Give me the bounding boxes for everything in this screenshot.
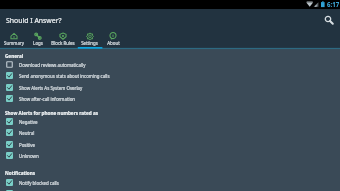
staticText: Settings [81,40,98,46]
button[interactable]: Summary [0,29,27,49]
staticText: Neutral [19,130,35,136]
staticText: Summary [4,40,24,46]
button[interactable]: Notify unblocked calls [0,188,340,191]
button[interactable]: Search [318,10,340,30]
staticText: Send anonymous stats about incoming call… [19,73,110,79]
button[interactable]: Positive [0,139,340,150]
staticText: Negative [19,119,38,125]
button[interactable]: Unknown [0,150,340,161]
staticText: Show Alerts for phone numbers rated as [5,110,99,116]
staticText: Should I Answer? [6,16,62,25]
staticText: Show after-call information [19,96,76,102]
button[interactable]: Settings [77,29,102,49]
button[interactable]: Send anonymous stats about incoming call… [0,70,340,81]
button[interactable]: Show Alerts As System Overlay [0,82,340,93]
button[interactable]: Download reviews automatically [0,59,340,70]
button[interactable]: About [102,29,124,49]
staticText: Notify blocked calls [19,180,59,186]
button[interactable]: Logs [27,29,48,49]
staticText: Download reviews automatically [19,62,86,68]
button[interactable]: Show after-call information [0,93,340,104]
staticText: 6:17 [327,0,340,8]
staticText: About [107,40,120,46]
staticText: Block Rules [51,40,75,46]
staticText: Logs [33,40,43,46]
button[interactable]: Negative [0,116,340,127]
staticText: Positive [19,142,35,148]
button[interactable]: Neutral [0,127,340,138]
button[interactable]: Block Rules [48,29,77,49]
button[interactable]: Notify blocked calls [0,177,340,188]
staticText: Notifications [5,170,36,176]
staticText: Unknown [19,153,39,159]
staticText: General [5,53,24,59]
staticText: Show Alerts As System Overlay [19,85,83,91]
